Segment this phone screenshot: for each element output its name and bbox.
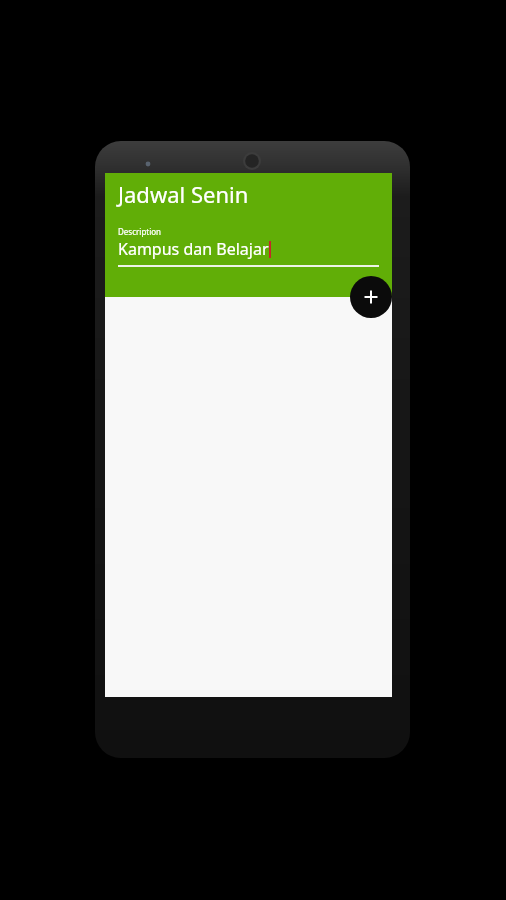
staticText: Kampus dan Belajar — [118, 238, 269, 260]
staticText: Description — [118, 226, 162, 237]
button[interactable]: Add schedule — [350, 276, 392, 318]
staticText: Jadwal Senin — [118, 179, 249, 209]
